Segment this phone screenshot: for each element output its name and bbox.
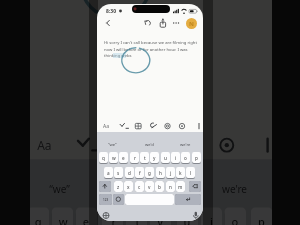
staticText: p [258, 214, 265, 225]
button[interactable]: “we” [49, 183, 71, 198]
staticText: p [195, 155, 198, 161]
button[interactable] [171, 16, 182, 30]
staticText: 123 [103, 198, 109, 202]
staticText: e [122, 155, 125, 161]
button[interactable] [99, 181, 111, 192]
staticText: i [175, 155, 177, 161]
button[interactable]: we'd [145, 142, 154, 148]
staticText: y [153, 155, 156, 161]
button[interactable]: e [76, 207, 97, 225]
staticText: a [107, 170, 110, 176]
staticText: c [138, 184, 141, 190]
staticText: o [232, 214, 239, 225]
button[interactable]: i [200, 207, 222, 225]
staticText: o [184, 155, 187, 161]
button[interactable]: d [125, 167, 134, 178]
button[interactable]: y [150, 207, 172, 225]
staticText: k [179, 170, 182, 176]
staticText: n [169, 184, 172, 190]
button[interactable]: n [166, 181, 175, 192]
button[interactable]: we're [222, 183, 248, 198]
button[interactable]: i [171, 152, 180, 163]
button[interactable]: r [102, 207, 124, 225]
button[interactable]: r [130, 152, 139, 163]
staticText: v [148, 184, 151, 190]
staticText: q [35, 214, 42, 225]
button[interactable] [113, 194, 124, 205]
button[interactable]: w [109, 152, 118, 163]
staticText: m [178, 184, 183, 190]
button[interactable]: b [155, 181, 164, 192]
button[interactable]: u [176, 207, 198, 225]
button[interactable]: h [156, 167, 165, 178]
staticText: t [136, 214, 140, 225]
button[interactable]: o [181, 152, 190, 163]
button[interactable]: e [119, 152, 128, 163]
button[interactable]: we're [180, 142, 191, 148]
button[interactable]: o [224, 207, 246, 225]
staticText: f [139, 170, 141, 176]
staticText: N [189, 20, 194, 28]
button[interactable]: 123 [99, 194, 112, 205]
staticText: e [83, 214, 90, 225]
button[interactable]: w [52, 207, 73, 225]
button[interactable]: g [145, 167, 154, 178]
button[interactable]: p [251, 207, 272, 225]
staticText: 8:30 [106, 8, 116, 15]
button[interactable]: v [145, 181, 154, 192]
button[interactable]: “we” [108, 142, 117, 148]
staticText: u [184, 214, 191, 225]
staticText: l [190, 170, 192, 176]
button[interactable]: q [99, 152, 108, 163]
button[interactable] [142, 16, 154, 30]
button[interactable]: s [114, 167, 123, 178]
staticText: r [134, 155, 136, 161]
staticText: t [144, 155, 146, 161]
button[interactable]: c [135, 181, 144, 192]
button[interactable]: q [28, 207, 49, 225]
staticText: x [127, 184, 130, 190]
button[interactable] [101, 16, 115, 30]
staticText: j [170, 170, 172, 176]
button[interactable] [125, 194, 174, 205]
button[interactable] [157, 16, 169, 30]
button[interactable]: k [176, 167, 185, 178]
button[interactable]: Aa [103, 123, 110, 130]
staticText: i [210, 214, 215, 225]
staticText: w [59, 214, 68, 225]
button[interactable]: z [114, 181, 123, 192]
staticText: d [128, 170, 131, 176]
button[interactable]: t [140, 152, 149, 163]
button[interactable] [189, 181, 201, 192]
staticText: r [112, 214, 116, 225]
button[interactable]: f [135, 167, 144, 178]
staticText: s [117, 170, 120, 176]
button[interactable]: j [166, 167, 175, 178]
button[interactable]: Aa [37, 138, 54, 154]
staticText: b [158, 184, 161, 190]
staticText: q [102, 155, 105, 161]
button[interactable]: we'd [138, 183, 160, 198]
staticText: u [164, 155, 167, 161]
staticText: g [148, 170, 151, 176]
button[interactable]: u [161, 152, 170, 163]
button[interactable]: l [186, 167, 195, 178]
button[interactable]: N [186, 18, 197, 29]
staticText: w [112, 155, 116, 161]
button[interactable]: a [104, 167, 113, 178]
button[interactable] [175, 194, 201, 205]
button[interactable]: t [126, 207, 148, 225]
staticText: z [117, 184, 120, 190]
button[interactable]: x [124, 181, 133, 192]
button[interactable]: p [192, 152, 201, 163]
button[interactable]: m [176, 181, 185, 192]
staticText: Hi sorry I can't call because we are fil… [104, 40, 199, 58]
staticText: h [159, 170, 162, 176]
staticText: y [157, 214, 164, 225]
button[interactable]: y [150, 152, 159, 163]
